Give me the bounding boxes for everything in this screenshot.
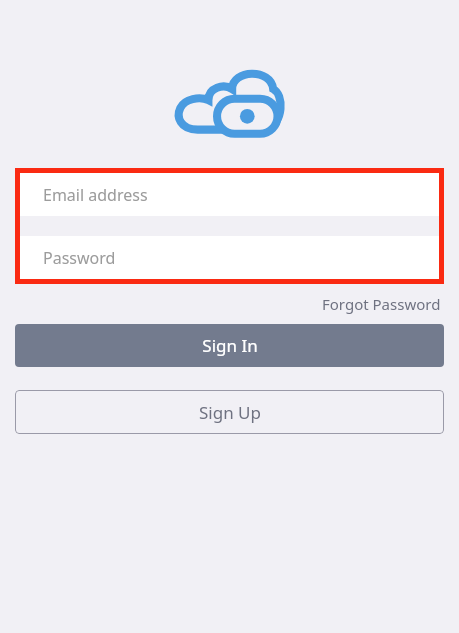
button[interactable]: Email address (20, 173, 439, 216)
button[interactable]: Password (20, 236, 439, 279)
button[interactable]: Forgot Password (320, 292, 443, 316)
staticText: Email address (43, 184, 148, 206)
staticText: Password (43, 247, 116, 269)
staticText: Forgot Password (322, 294, 441, 314)
button[interactable]: Sign Up (15, 390, 444, 434)
other: App logo (176, 68, 284, 138)
button[interactable]: Sign In (15, 324, 444, 367)
staticText: Sign Up (199, 401, 261, 424)
staticText: Sign In (202, 334, 258, 357)
